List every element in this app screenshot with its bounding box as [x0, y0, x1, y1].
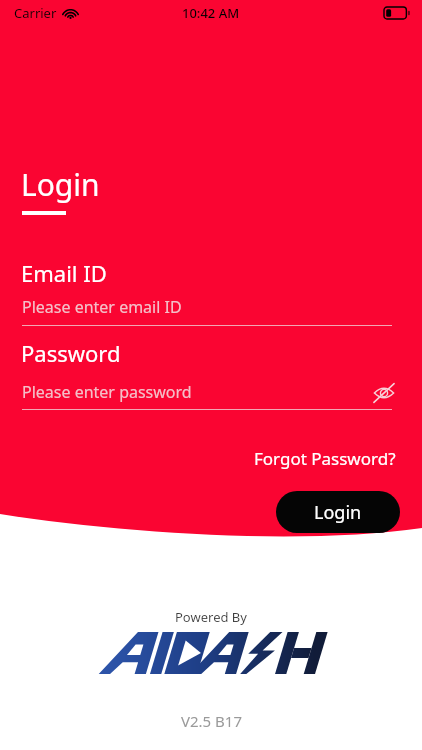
staticText: Login	[21, 164, 100, 205]
staticText: 10:42 AM	[182, 4, 240, 22]
staticText: Carrier	[14, 4, 57, 22]
staticText: Please enter email ID	[22, 296, 182, 318]
staticText: Login	[314, 500, 362, 525]
staticText: Powered By	[175, 608, 247, 626]
staticText: Password	[21, 338, 121, 368]
staticText: V2.5 B17	[181, 711, 242, 731]
staticText: Email ID	[21, 258, 107, 288]
button[interactable]: Please enter password	[22, 381, 362, 407]
staticText: Please enter password	[22, 381, 192, 403]
staticText: Forgot Password?	[254, 447, 396, 470]
button[interactable]: Login	[276, 491, 400, 533]
button[interactable]: Forgot Password?	[232, 444, 396, 472]
button[interactable]: Please enter email ID	[22, 296, 392, 324]
button[interactable]: Show password	[368, 377, 400, 409]
